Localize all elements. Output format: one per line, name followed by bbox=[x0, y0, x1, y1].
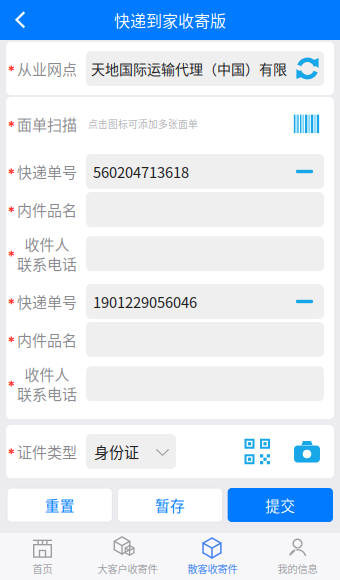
staticText: 首页 bbox=[32, 561, 52, 576]
staticText: ✱ bbox=[8, 119, 15, 128]
staticText: 联系电话 bbox=[17, 383, 77, 404]
staticText: 身份证 bbox=[94, 441, 139, 462]
staticText: ✱ bbox=[8, 167, 15, 176]
staticText: 1901229056046 bbox=[93, 291, 197, 312]
button[interactable]: 身份证 bbox=[86, 434, 176, 469]
staticText: 联系电话 bbox=[17, 253, 77, 274]
button[interactable]: 删除单号 bbox=[296, 300, 313, 303]
button[interactable]: 天地国际运输代理（中国）有限 bbox=[86, 51, 324, 86]
staticText: 大客户收寄件 bbox=[97, 561, 157, 576]
staticText: 散客收寄件 bbox=[187, 561, 237, 576]
staticText: 内件品名 bbox=[17, 199, 77, 220]
staticText: 收件人 bbox=[24, 363, 69, 385]
staticText: 证件类型 bbox=[17, 441, 77, 462]
staticText: 快递单号 bbox=[17, 161, 77, 182]
staticText: ✱ bbox=[8, 379, 15, 388]
button[interactable]: 删除单号 bbox=[296, 170, 313, 173]
staticText: 面单扫描 bbox=[17, 113, 77, 135]
staticText: 点击图标可添加多张面单 bbox=[88, 117, 198, 131]
staticText: 560204713618 bbox=[93, 161, 189, 182]
staticText: 天地国际运输代理（中国）有限 bbox=[91, 58, 287, 79]
staticText: 重置 bbox=[45, 494, 75, 516]
staticText: 快递到家收寄版 bbox=[114, 8, 226, 32]
staticText: ✱ bbox=[8, 447, 15, 456]
staticText: 提交 bbox=[265, 494, 295, 516]
staticText: 快递单号 bbox=[17, 291, 77, 312]
button[interactable]: 大客户收寄件 bbox=[85, 533, 170, 580]
staticText: 从业网点 bbox=[17, 58, 77, 79]
staticText: ✱ bbox=[8, 249, 15, 258]
button[interactable]: 散客收寄件 bbox=[170, 533, 255, 580]
button[interactable]: 拍照 bbox=[294, 440, 320, 462]
button[interactable]: 提交 bbox=[228, 488, 333, 522]
button[interactable]: 暂存 bbox=[117, 488, 223, 522]
button[interactable]: 返回 bbox=[0, 0, 40, 40]
button[interactable]: 首页 bbox=[0, 533, 85, 580]
staticText: ✱ bbox=[8, 335, 15, 344]
staticText: 我的信息 bbox=[277, 561, 317, 576]
button[interactable]: 扫描面单 bbox=[293, 115, 320, 133]
staticText: ✱ bbox=[8, 64, 15, 73]
button[interactable]: 重置 bbox=[7, 488, 112, 522]
staticText: ✱ bbox=[8, 297, 15, 306]
staticText: ✱ bbox=[8, 205, 15, 214]
staticText: 暂存 bbox=[155, 494, 185, 516]
button[interactable]: 我的信息 bbox=[255, 533, 340, 580]
staticText: 收件人 bbox=[24, 233, 69, 255]
button[interactable]: 扫描二维码 bbox=[244, 439, 270, 464]
staticText: 内件品名 bbox=[17, 329, 77, 350]
